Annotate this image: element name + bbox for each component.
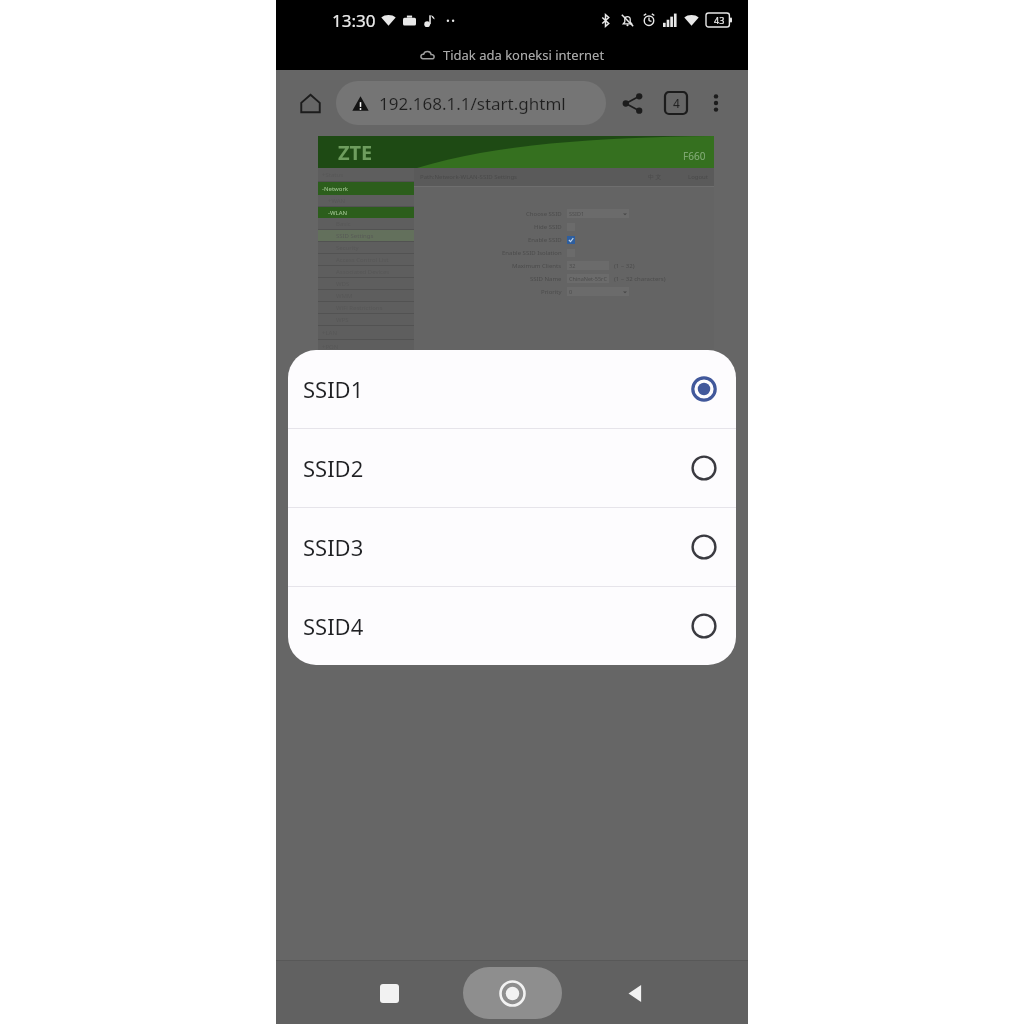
button[interactable]: -Network <box>318 182 414 195</box>
staticText: Maximum Clients <box>512 262 562 270</box>
staticText: Choose SSID <box>526 210 562 218</box>
staticText: -Network <box>322 185 349 193</box>
staticText: ZTE <box>338 139 373 166</box>
staticText: SSID4 <box>303 611 364 641</box>
staticText: 192.168.1.1/start.ghtml <box>379 92 566 115</box>
button[interactable]: SSID Settings <box>318 230 414 241</box>
staticText: Tidak ada koneksi internet <box>443 46 605 64</box>
staticText: SSID Settings <box>336 232 374 240</box>
button[interactable]: Home <box>463 967 562 1019</box>
button[interactable]: 192.168.1.1/start.ghtml <box>336 81 606 125</box>
staticText: Path:Network-WLAN-SSID Settings <box>420 173 517 181</box>
staticText: 43 <box>714 14 725 26</box>
staticText: Hide SSID <box>534 223 562 231</box>
staticText: 中 文 <box>648 173 662 181</box>
staticText: Enable SSID <box>528 236 562 244</box>
button[interactable]: Home <box>290 83 330 123</box>
staticText: (1 ~ 32 characters) <box>614 275 666 283</box>
button[interactable]: +PON <box>318 340 414 353</box>
button[interactable]: -WLAN <box>318 207 414 218</box>
button[interactable]: SSID3 <box>288 508 736 586</box>
button[interactable]: More options <box>698 85 734 121</box>
staticText: Priority <box>541 288 562 296</box>
staticText: -WLAN <box>328 209 348 217</box>
button[interactable]: Tabs, 4 open <box>656 83 696 123</box>
staticText: SSID1 <box>303 374 364 404</box>
button[interactable] <box>567 236 575 244</box>
staticText: SSID3 <box>303 532 364 562</box>
button[interactable]: Share <box>612 83 652 123</box>
staticText: F660 <box>683 149 706 163</box>
staticText: (1 ~ 32) <box>614 262 635 270</box>
staticText: 32 <box>569 262 576 269</box>
staticText: Enable SSID Isolation <box>502 249 562 257</box>
staticText: +PON <box>322 343 339 351</box>
staticText: SSID Name <box>530 275 562 283</box>
button[interactable]: SSID4 <box>288 587 736 665</box>
staticText: 0 <box>569 288 573 295</box>
staticText: SSID2 <box>303 453 364 483</box>
staticText: 4 <box>673 95 680 111</box>
staticText: ChinaNet-55rC <box>569 275 607 282</box>
button[interactable]: SSID2 <box>288 429 736 507</box>
button[interactable]: SSID1 <box>567 209 629 218</box>
button[interactable]: ChinaNet-55rC <box>567 274 609 283</box>
staticText: SSID1 <box>569 210 585 217</box>
button[interactable]: SSID1 <box>288 350 736 428</box>
button[interactable]: Recent apps <box>362 966 416 1020</box>
staticText: 13:30 <box>332 9 376 32</box>
button[interactable]: Back <box>609 966 663 1020</box>
staticText: Logout <box>688 173 708 181</box>
